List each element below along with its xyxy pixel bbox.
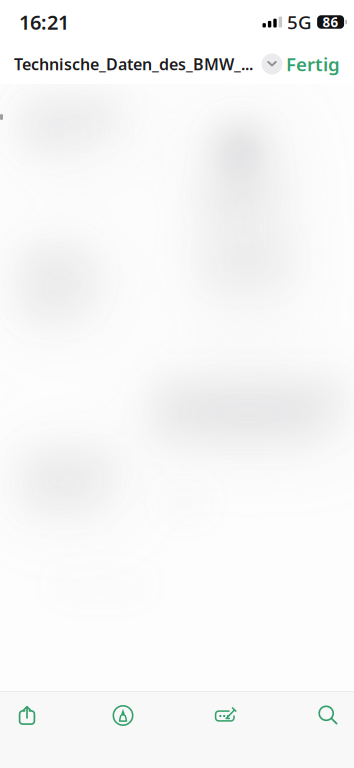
staticText: 5G (287, 10, 312, 34)
button[interactable]: Teilen (1, 691, 53, 739)
button[interactable]: Optionen (261, 53, 283, 75)
button[interactable]: Ausfüllen und unterschreiben (200, 691, 252, 739)
staticText: Fertig (286, 52, 340, 76)
staticText: 16:21 (19, 9, 69, 35)
button[interactable]: Suchen (302, 691, 354, 739)
staticText: Technische_Daten_des_BMW_... (14, 53, 253, 75)
button[interactable]: Fertig (286, 52, 340, 76)
staticText: 86 (323, 13, 339, 31)
button[interactable]: Markieren (97, 691, 149, 739)
